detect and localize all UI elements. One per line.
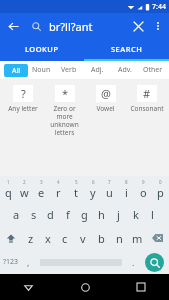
staticText: u bbox=[106, 185, 113, 200]
button[interactable]: 1 bbox=[0, 176, 16, 202]
staticText: Verb bbox=[61, 65, 77, 75]
staticText: 0 bbox=[159, 179, 162, 185]
button[interactable]: 3 bbox=[33, 176, 50, 202]
staticText: k bbox=[133, 207, 139, 222]
button[interactable]: Space bbox=[34, 250, 127, 274]
staticText: 7:44 bbox=[152, 2, 166, 12]
button[interactable]: h bbox=[93, 202, 110, 226]
staticText: r bbox=[56, 185, 61, 200]
staticText: l bbox=[151, 207, 154, 222]
button[interactable]: Back bbox=[0, 274, 57, 300]
staticText: v bbox=[80, 231, 86, 246]
button[interactable]: b bbox=[92, 226, 110, 250]
button[interactable]: Shift bbox=[0, 226, 22, 250]
button[interactable]: 5 bbox=[67, 176, 84, 202]
staticText: ?123 bbox=[3, 257, 19, 267]
staticText: c bbox=[62, 231, 68, 246]
button[interactable]: * bbox=[44, 85, 85, 137]
button[interactable]: 8 bbox=[118, 176, 135, 202]
button[interactable]: c bbox=[56, 226, 74, 250]
button[interactable]: j bbox=[110, 202, 127, 226]
button[interactable]: s bbox=[25, 202, 42, 226]
staticText: x bbox=[45, 231, 51, 246]
button[interactable]: @ bbox=[85, 85, 126, 113]
staticText: 6 bbox=[92, 179, 95, 185]
staticText: 4 bbox=[57, 179, 60, 185]
staticText: f bbox=[66, 207, 70, 222]
button[interactable]: br?ll?ant bbox=[49, 19, 127, 34]
button[interactable]: . bbox=[127, 250, 139, 274]
button[interactable]: LOOKUP bbox=[0, 39, 84, 59]
button[interactable]: Backspace bbox=[146, 226, 169, 250]
staticText: @ bbox=[101, 86, 111, 101]
staticText: b bbox=[98, 231, 105, 246]
staticText: h bbox=[98, 207, 105, 222]
button[interactable]: Other bbox=[139, 61, 167, 79]
staticText: 2 bbox=[23, 179, 26, 185]
button[interactable]: # bbox=[126, 85, 167, 113]
button[interactable]: Search bbox=[139, 250, 169, 274]
staticText: w bbox=[20, 185, 29, 200]
button[interactable]: Back bbox=[0, 13, 26, 39]
staticText: e bbox=[38, 185, 45, 200]
button[interactable]: m bbox=[128, 226, 146, 250]
staticText: Vowel bbox=[96, 104, 115, 113]
button[interactable]: All bbox=[4, 64, 28, 77]
staticText: * bbox=[62, 86, 69, 101]
button[interactable]: Home bbox=[57, 274, 113, 300]
staticText: # bbox=[143, 86, 151, 101]
button[interactable]: 4 bbox=[50, 176, 67, 202]
staticText: 9 bbox=[142, 179, 145, 185]
staticText: q bbox=[5, 185, 12, 200]
staticText: , bbox=[27, 256, 30, 268]
button[interactable]: g bbox=[76, 202, 93, 226]
staticText: LOOKUP bbox=[25, 44, 59, 54]
button[interactable]: 6 bbox=[84, 176, 101, 202]
staticText: 8 bbox=[125, 179, 128, 185]
staticText: Adv. bbox=[118, 65, 132, 75]
button[interactable]: , bbox=[22, 250, 34, 274]
staticText: ? bbox=[21, 86, 26, 101]
staticText: m bbox=[132, 231, 143, 246]
button[interactable]: Adv. bbox=[111, 61, 139, 79]
staticText: n bbox=[116, 231, 123, 246]
staticText: Zero or more unknown letters bbox=[45, 104, 84, 137]
button[interactable]: n bbox=[110, 226, 128, 250]
button[interactable]: More options bbox=[149, 17, 167, 35]
staticText: g bbox=[81, 207, 88, 222]
staticText: 7 bbox=[108, 179, 111, 185]
button[interactable]: l bbox=[144, 202, 161, 226]
button[interactable]: d bbox=[42, 202, 59, 226]
staticText: Any letter bbox=[8, 104, 38, 113]
button[interactable]: k bbox=[127, 202, 144, 226]
staticText: a bbox=[13, 207, 20, 222]
button[interactable]: 7 bbox=[101, 176, 118, 202]
button[interactable]: v bbox=[74, 226, 92, 250]
staticText: 1 bbox=[7, 179, 10, 185]
staticText: . bbox=[132, 256, 135, 268]
button[interactable]: 0 bbox=[152, 176, 169, 202]
button[interactable]: Clear bbox=[127, 15, 149, 37]
button[interactable]: 9 bbox=[135, 176, 152, 202]
staticText: i bbox=[125, 185, 128, 200]
button[interactable]: x bbox=[39, 226, 56, 250]
staticText: j bbox=[117, 207, 120, 222]
staticText: s bbox=[31, 207, 37, 222]
button[interactable]: Recents bbox=[113, 274, 169, 300]
button[interactable]: Noun bbox=[28, 61, 55, 79]
button[interactable]: ? bbox=[2, 85, 44, 113]
button[interactable]: ?123 bbox=[0, 250, 22, 274]
staticText: o bbox=[140, 185, 147, 200]
button[interactable]: 2 bbox=[16, 176, 33, 202]
staticText: p bbox=[157, 185, 164, 200]
staticText: t bbox=[74, 185, 78, 200]
button[interactable]: f bbox=[59, 202, 76, 226]
button[interactable]: SEARCH bbox=[84, 39, 169, 59]
staticText: d bbox=[47, 207, 54, 222]
staticText: Adj. bbox=[91, 65, 104, 75]
button[interactable]: a bbox=[8, 202, 25, 226]
button[interactable]: z bbox=[22, 226, 39, 250]
staticText: 3 bbox=[40, 179, 43, 185]
button[interactable]: Verb bbox=[55, 61, 83, 79]
button[interactable]: Adj. bbox=[83, 61, 111, 79]
